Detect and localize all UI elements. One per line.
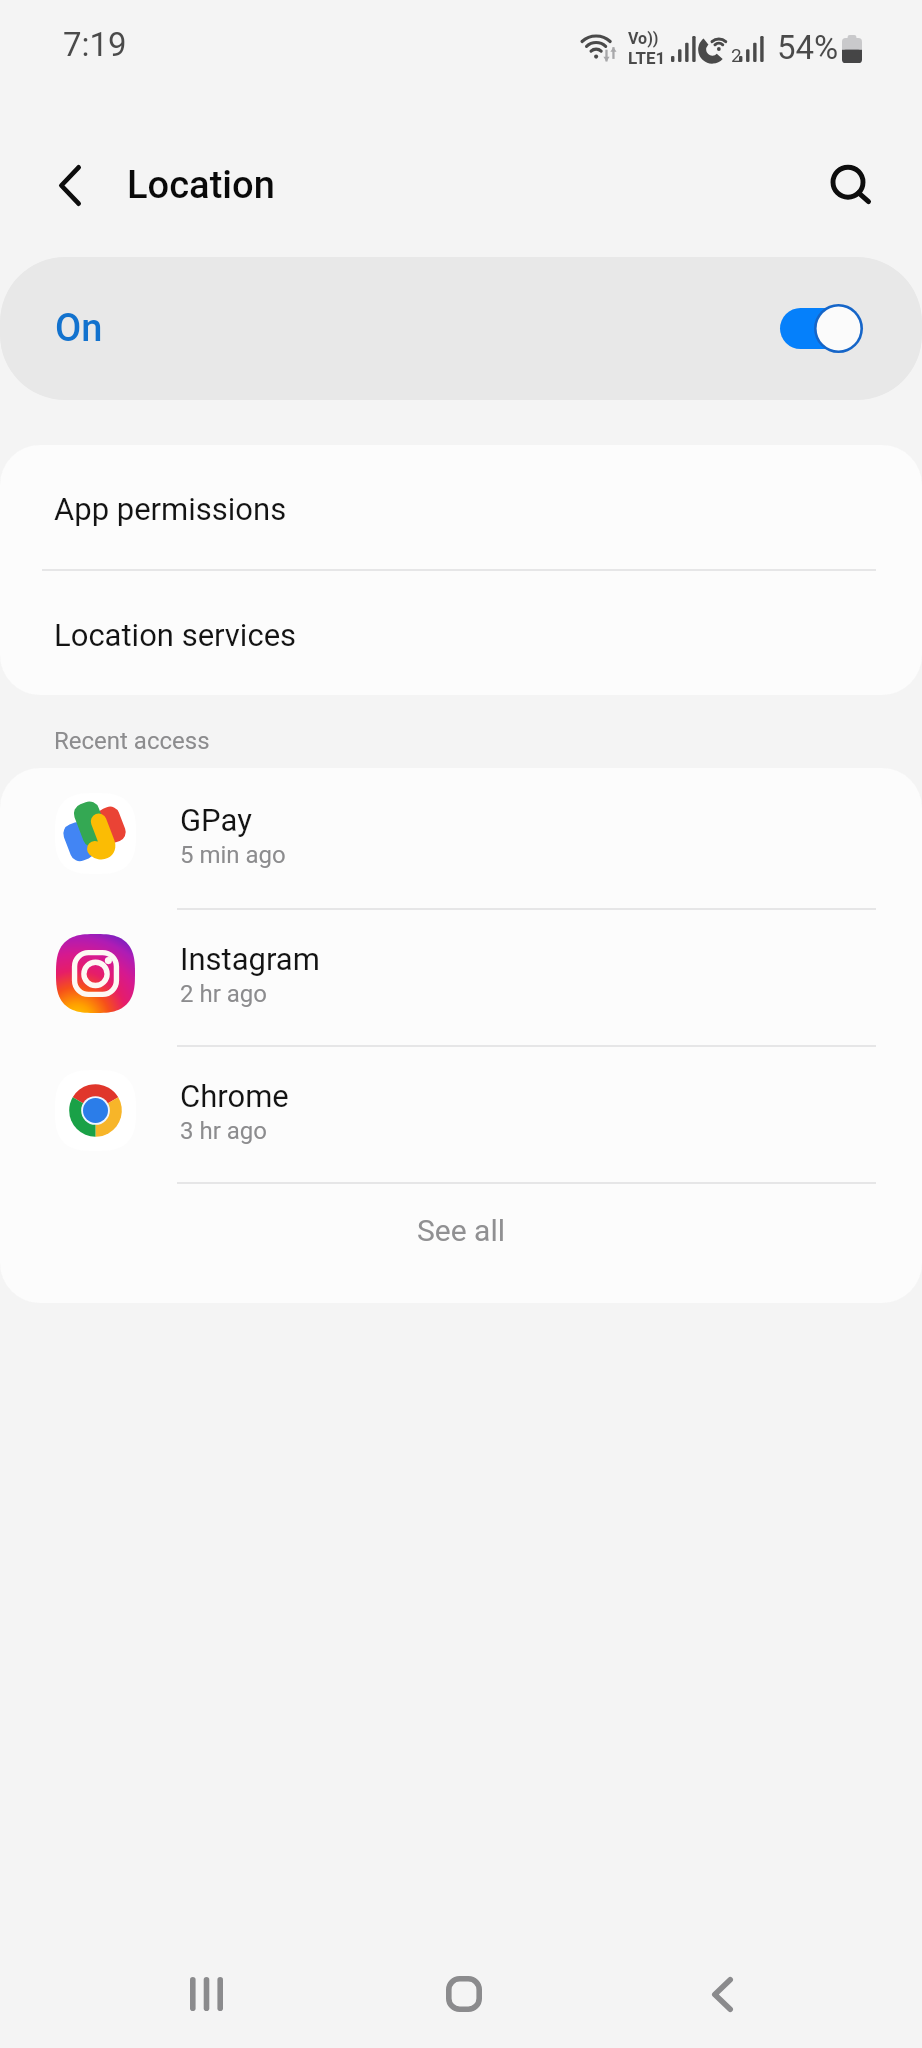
button[interactable]: See all xyxy=(0,1184,922,1303)
button[interactable]: Back xyxy=(666,1940,778,2048)
staticText: 54% xyxy=(777,28,839,67)
button[interactable]: Recents xyxy=(150,1940,262,2048)
staticText: 5 min ago xyxy=(180,841,286,869)
button[interactable]: Home xyxy=(408,1940,520,2048)
staticText: GPay xyxy=(180,802,252,838)
staticText: Recent access xyxy=(54,727,210,755)
staticText: Chrome xyxy=(180,1078,289,1114)
staticText: 2 hr ago xyxy=(180,980,267,1008)
button[interactable]: GPay xyxy=(0,768,922,908)
button[interactable]: Instagram xyxy=(0,910,922,1045)
staticText: 7:19 xyxy=(63,25,127,64)
button[interactable]: Chrome xyxy=(0,1047,922,1182)
staticText: See all xyxy=(417,1213,505,1248)
staticText: Location xyxy=(127,163,275,208)
staticText: App permissions xyxy=(54,491,287,527)
button[interactable]: App permissions xyxy=(0,445,922,569)
button[interactable]: Navigate up xyxy=(28,143,112,227)
button[interactable]: Search xyxy=(810,143,894,227)
button[interactable]: Location services xyxy=(0,571,922,695)
staticText: On xyxy=(55,306,103,351)
staticText: 3 hr ago xyxy=(180,1117,267,1145)
button[interactable]: On xyxy=(0,257,922,400)
staticText: Location services xyxy=(54,617,297,653)
staticText: Instagram xyxy=(180,941,320,977)
staticText: 2 xyxy=(731,44,742,66)
staticText: LTE1 xyxy=(628,48,666,68)
staticText: Vo)) xyxy=(628,29,659,48)
